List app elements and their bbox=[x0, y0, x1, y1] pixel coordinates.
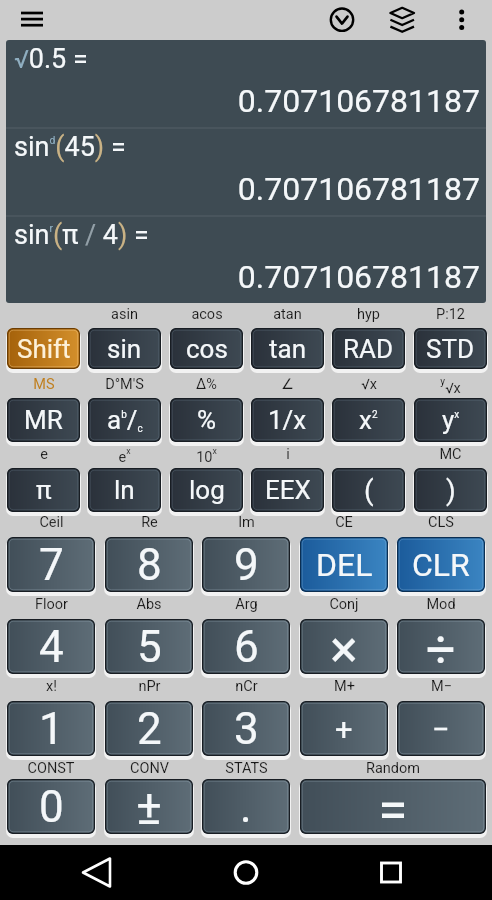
staticText: 5 bbox=[137, 621, 162, 673]
button[interactable]: % bbox=[170, 398, 243, 442]
button[interactable]: History bbox=[326, 4, 358, 36]
staticText: ∠ bbox=[281, 376, 294, 393]
button[interactable]: ( bbox=[332, 468, 405, 512]
button[interactable]: EEX bbox=[251, 468, 324, 512]
staticText: + bbox=[335, 711, 353, 747]
staticText: RAD bbox=[343, 334, 394, 364]
button[interactable]: × bbox=[300, 619, 388, 674]
staticText: CLR bbox=[412, 546, 470, 584]
staticText: nPr bbox=[138, 678, 161, 695]
button[interactable]: 7 bbox=[7, 537, 95, 592]
button[interactable]: 3 bbox=[202, 701, 290, 756]
button[interactable]: 9 bbox=[202, 537, 290, 592]
button[interactable]: 5 bbox=[105, 619, 193, 674]
staticText: % bbox=[197, 405, 217, 435]
button[interactable]: 6 bbox=[202, 619, 290, 674]
button[interactable]: √0.5 = bbox=[6, 40, 486, 303]
staticText: Im bbox=[238, 514, 255, 531]
staticText: CONV bbox=[130, 760, 169, 777]
button[interactable]: π bbox=[7, 468, 80, 512]
button[interactable]: ln bbox=[88, 468, 161, 512]
staticText: e bbox=[40, 446, 48, 463]
staticText: hyp bbox=[357, 306, 380, 323]
staticText: acos bbox=[191, 306, 223, 323]
button[interactable]: ab/c bbox=[88, 398, 161, 442]
staticText: 3 bbox=[234, 703, 259, 755]
staticText: y√x bbox=[440, 376, 461, 397]
staticText: sinr(π / 4) = bbox=[14, 219, 149, 251]
button[interactable]: 8 bbox=[105, 537, 193, 592]
staticText: nCr bbox=[235, 678, 258, 695]
staticText: 1/x bbox=[268, 405, 307, 435]
staticText: 7 bbox=[39, 539, 64, 591]
staticText: 0.707106781187 bbox=[6, 170, 480, 208]
staticText: cos bbox=[186, 334, 228, 364]
staticText: 0 bbox=[39, 781, 64, 833]
button[interactable]: 1/x bbox=[251, 398, 324, 442]
button[interactable]: cos bbox=[170, 328, 243, 369]
staticText: π bbox=[36, 475, 52, 505]
staticText: P:12 bbox=[436, 306, 465, 323]
button[interactable]: = bbox=[300, 779, 486, 834]
staticText: log bbox=[189, 475, 225, 505]
staticText: CE bbox=[335, 514, 353, 531]
button[interactable]: CLR bbox=[397, 537, 485, 592]
staticText: asin bbox=[111, 306, 138, 323]
staticText: 0.707106781187 bbox=[6, 258, 480, 296]
staticText: Arg bbox=[235, 596, 258, 613]
staticText: × bbox=[330, 619, 358, 674]
button[interactable]: DEL bbox=[300, 537, 388, 592]
staticText: STD bbox=[426, 334, 475, 364]
button[interactable]: 1 bbox=[7, 701, 95, 756]
staticText: M− bbox=[431, 678, 452, 695]
staticText: 1 bbox=[39, 703, 64, 755]
button[interactable]: 2 bbox=[105, 701, 193, 756]
button[interactable]: STD bbox=[414, 328, 487, 369]
button[interactable]: RAD bbox=[332, 328, 405, 369]
button[interactable]: Back bbox=[78, 849, 124, 895]
staticText: 9 bbox=[234, 539, 259, 591]
staticText: DEL bbox=[316, 546, 373, 584]
staticText: √0.5 = bbox=[14, 43, 88, 75]
staticText: ± bbox=[136, 779, 162, 834]
button[interactable]: 4 bbox=[7, 619, 95, 674]
staticText: MC bbox=[439, 446, 462, 463]
staticText: 8 bbox=[137, 539, 162, 591]
button[interactable]: ÷ bbox=[397, 619, 485, 674]
button[interactable]: ) bbox=[414, 468, 487, 512]
staticText: Ceil bbox=[39, 514, 64, 531]
staticText: Conj bbox=[329, 596, 359, 613]
staticText: 0.707106781187 bbox=[6, 82, 480, 120]
button[interactable]: MR bbox=[7, 398, 80, 442]
staticText: . bbox=[240, 781, 252, 833]
staticText: 6 bbox=[234, 621, 259, 673]
staticText: x! bbox=[46, 678, 57, 695]
staticText: Shift bbox=[17, 334, 71, 364]
button[interactable]: − bbox=[397, 701, 485, 756]
staticText: Abs bbox=[136, 596, 162, 613]
button[interactable]: tan bbox=[251, 328, 324, 369]
staticText: CONST bbox=[27, 760, 75, 777]
staticText: = bbox=[378, 779, 408, 834]
button[interactable]: ± bbox=[105, 779, 193, 834]
button[interactable]: + bbox=[300, 701, 388, 756]
button[interactable]: Layers bbox=[386, 3, 418, 35]
staticText: ÷ bbox=[426, 619, 456, 674]
staticText: Re bbox=[141, 514, 158, 531]
staticText: ab/c bbox=[107, 405, 143, 435]
button[interactable]: log bbox=[170, 468, 243, 512]
button[interactable]: Home bbox=[223, 849, 269, 895]
staticText: Δ% bbox=[196, 376, 217, 393]
button[interactable]: yx bbox=[414, 398, 487, 442]
staticText: EEX bbox=[265, 475, 311, 505]
button[interactable]: . bbox=[202, 779, 290, 834]
button[interactable]: Menu bbox=[13, 5, 51, 35]
button[interactable]: x2 bbox=[332, 398, 405, 442]
button[interactable]: Shift bbox=[7, 328, 80, 369]
button[interactable]: More options bbox=[449, 3, 475, 37]
button[interactable]: sin bbox=[88, 328, 161, 369]
staticText: 2 bbox=[137, 703, 162, 755]
staticText: x2 bbox=[359, 405, 378, 435]
button[interactable]: Recents bbox=[368, 849, 414, 895]
button[interactable]: 0 bbox=[7, 779, 95, 834]
